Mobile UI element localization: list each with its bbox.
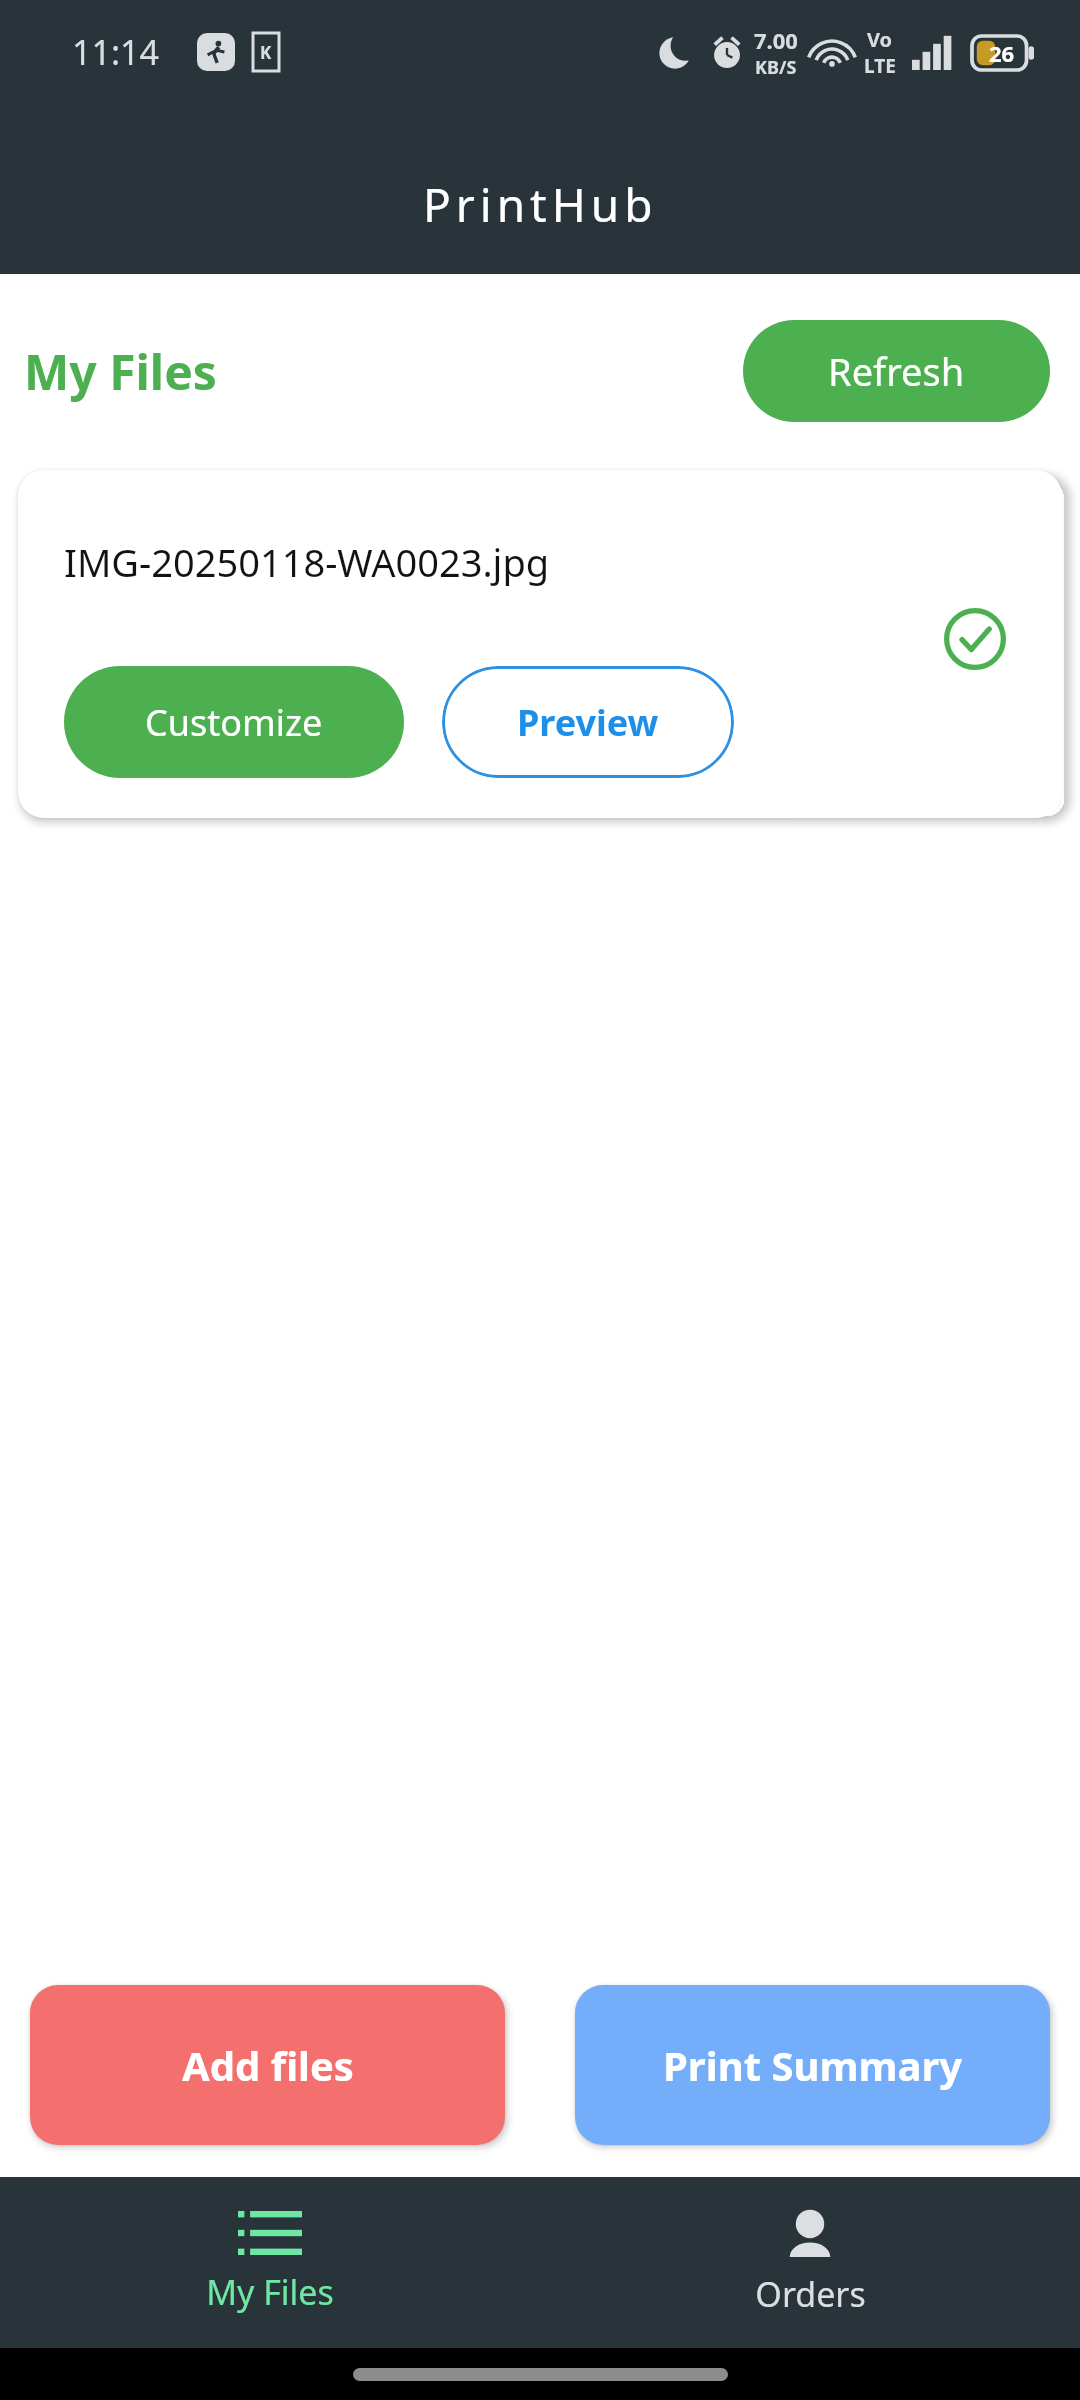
button[interactable]: Print Summary bbox=[575, 1985, 1050, 2145]
staticText: My Files bbox=[206, 2269, 334, 2315]
staticText: Preview bbox=[517, 698, 659, 747]
staticText: IMG-20250118-WA0023.jpg bbox=[64, 536, 550, 588]
button[interactable]: Preview bbox=[442, 666, 734, 778]
staticText: K bbox=[260, 41, 272, 64]
button[interactable]: Customize bbox=[64, 666, 404, 778]
staticText: Add files bbox=[182, 2038, 354, 2092]
staticText: 11:14 bbox=[72, 29, 159, 75]
staticText: Customize bbox=[145, 698, 323, 747]
staticText: Refresh bbox=[828, 345, 965, 397]
staticText: My Files bbox=[24, 339, 217, 404]
button[interactable]: Refresh bbox=[743, 320, 1050, 422]
staticText: KB/S bbox=[755, 55, 797, 80]
staticText: 7.00 bbox=[754, 25, 798, 55]
button[interactable]: IMG-20250118-WA0023.jpg bbox=[18, 470, 1062, 818]
staticText: Vo bbox=[867, 26, 893, 53]
staticText: Print Summary bbox=[663, 2038, 963, 2092]
staticText: LTE bbox=[864, 53, 896, 79]
button[interactable]: Selected bbox=[944, 608, 1006, 670]
button[interactable]: Orders bbox=[540, 2177, 1080, 2348]
button[interactable]: Add files bbox=[30, 1985, 505, 2145]
staticText: Orders bbox=[755, 2271, 866, 2317]
staticText: 26 bbox=[989, 38, 1015, 68]
staticText: PrintHub bbox=[423, 173, 658, 236]
button[interactable]: My Files bbox=[0, 2177, 540, 2348]
